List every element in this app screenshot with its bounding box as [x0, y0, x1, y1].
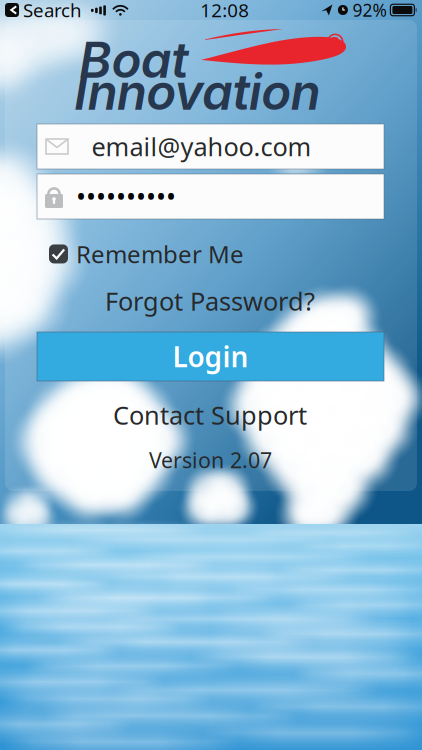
button[interactable]: Search: [5, 0, 82, 22]
staticText: Remember Me: [76, 238, 244, 270]
staticText: Version 2.07: [149, 446, 272, 474]
staticText: ®: [326, 27, 345, 57]
staticText: Search: [23, 0, 82, 22]
staticText: 12:08: [200, 0, 249, 22]
button[interactable]: Contact Support: [37, 403, 383, 427]
button[interactable]: Remember Me: [49, 238, 244, 270]
staticText: Boat: [79, 30, 188, 90]
button[interactable]: Forgot Password?: [37, 289, 383, 313]
staticText: Innovation: [74, 62, 321, 122]
staticText: 92%: [352, 0, 386, 21]
staticText: ••••••••••: [76, 179, 176, 214]
staticText: Contact Support: [113, 398, 307, 432]
staticText: email@yahoo.com: [91, 130, 311, 163]
staticText: Login: [172, 338, 248, 375]
button[interactable]: Login: [37, 332, 384, 381]
staticText: Forgot Password?: [105, 284, 315, 318]
